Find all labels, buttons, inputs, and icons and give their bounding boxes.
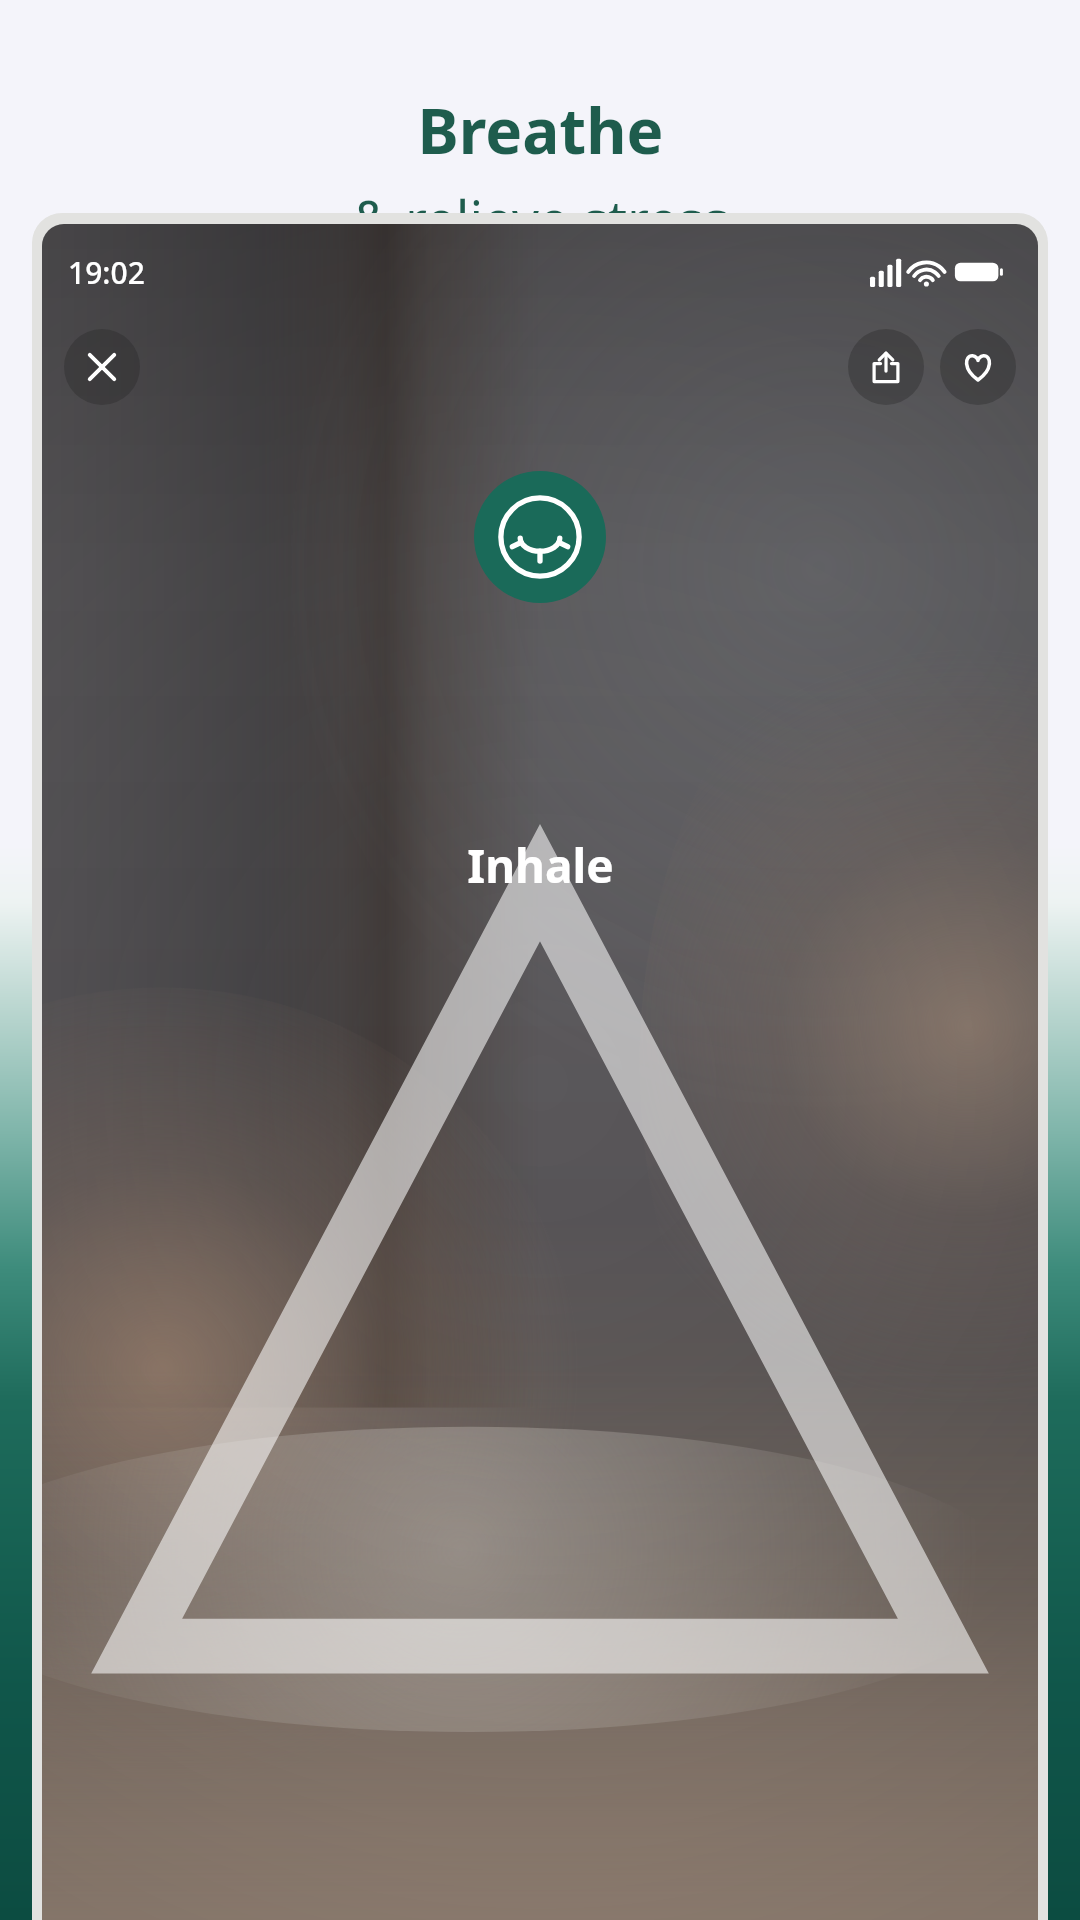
staticText: & relieve stress bbox=[352, 182, 729, 254]
staticText: Breathe bbox=[417, 88, 664, 172]
staticText: Inhale bbox=[467, 834, 614, 897]
staticText: 19:02 bbox=[68, 252, 145, 293]
button[interactable]: Close bbox=[64, 329, 140, 405]
button[interactable]: Breathing guide bbox=[474, 471, 606, 603]
button[interactable]: Favourite bbox=[940, 329, 1016, 405]
button[interactable]: Share bbox=[848, 329, 924, 405]
